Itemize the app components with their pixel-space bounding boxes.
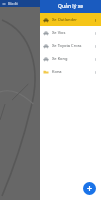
button[interactable]: Xe Outlander [40, 13, 101, 26]
button[interactable]: More options [92, 17, 98, 23]
button[interactable]: Xe Vios [40, 26, 101, 39]
staticText: Quản lý xe [58, 3, 84, 10]
button[interactable]: More options [92, 43, 98, 49]
button[interactable]: Xe Kong [40, 52, 101, 65]
button[interactable]: Xe Toyota Cross [40, 39, 101, 52]
staticText: Xe Vios [52, 30, 92, 35]
button[interactable]: More options [92, 56, 98, 62]
staticText: Bão đỏ [8, 2, 18, 6]
staticText: Xe Toyota Cross [52, 43, 92, 48]
button[interactable]: Kona [40, 65, 101, 78]
button[interactable]: More options [92, 69, 98, 75]
staticText: Xe Kong [52, 56, 92, 61]
button[interactable]: Add vehicle [83, 182, 96, 195]
staticText: Kona [52, 69, 92, 74]
button[interactable]: More options [92, 30, 98, 36]
staticText: Xe Outlander [52, 17, 92, 22]
